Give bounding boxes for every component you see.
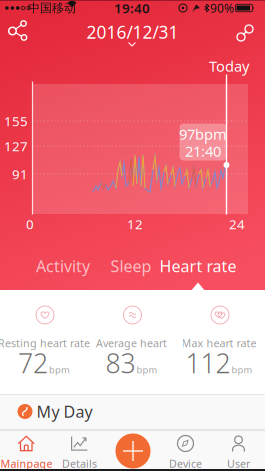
- staticText: Details: [62, 456, 97, 471]
- button[interactable]: My Day: [0, 394, 265, 430]
- staticText: bpm: [231, 363, 252, 376]
- staticText: bpm: [136, 363, 157, 376]
- button[interactable]: User: [214, 431, 262, 469]
- staticText: 83: [105, 345, 135, 381]
- staticText: 21:40: [185, 141, 221, 161]
- button[interactable]: Heart rate: [160, 255, 236, 277]
- staticText: Sleep: [110, 255, 151, 277]
- staticText: 0: [26, 215, 34, 233]
- button[interactable]: Sleep: [107, 255, 155, 277]
- staticText: 72: [18, 345, 48, 381]
- staticText: 19:40: [114, 0, 150, 17]
- button[interactable]: 2016/12/31: [98, 25, 166, 49]
- staticText: bpm: [49, 363, 70, 376]
- staticText: Device: [169, 456, 202, 471]
- staticText: User: [227, 456, 250, 471]
- staticText: Resting heart rate: [0, 336, 90, 350]
- staticText: Heart rate: [159, 255, 236, 277]
- button[interactable]: Mainpage: [2, 431, 50, 469]
- staticText: 24: [229, 215, 245, 233]
- staticText: 90%: [210, 0, 234, 16]
- staticText: 2016/12/31: [86, 20, 178, 43]
- staticText: 12: [127, 215, 143, 233]
- button[interactable]: Connect device: [236, 24, 256, 42]
- staticText: Mainpage: [0, 456, 52, 471]
- staticText: 112: [185, 345, 230, 381]
- button[interactable]: Details: [55, 431, 103, 469]
- staticText: Today: [209, 56, 249, 76]
- staticText: Average heart: [96, 336, 167, 350]
- button[interactable]: Share: [7, 20, 31, 42]
- button[interactable]: Activity: [33, 255, 93, 277]
- button[interactable]: Device: [161, 431, 209, 469]
- staticText: Max heart rate: [181, 336, 256, 350]
- button[interactable]: Add: [115, 433, 150, 468]
- staticText: My Day: [36, 401, 92, 422]
- staticText: 127: [4, 137, 28, 155]
- staticText: 155: [4, 112, 28, 130]
- staticText: Activity: [36, 255, 90, 277]
- staticText: 91: [12, 165, 28, 183]
- staticText: 中国移动: [28, 1, 76, 15]
- staticText: 97bpm: [179, 124, 227, 144]
